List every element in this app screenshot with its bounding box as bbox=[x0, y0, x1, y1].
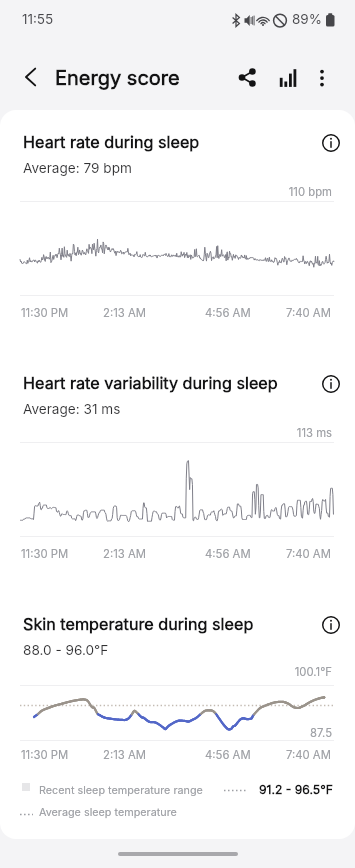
staticText: 7:40 AM bbox=[286, 547, 331, 561]
staticText: Energy score bbox=[55, 66, 180, 90]
staticText: Heart rate variability during sleep bbox=[23, 373, 278, 393]
staticText: Average: 79 bpm bbox=[23, 160, 132, 176]
staticText: 91.2 - 96.5°F bbox=[0, 782, 333, 797]
button[interactable]: About Heart rate during sleep bbox=[316, 128, 346, 158]
staticText: 7:40 AM bbox=[286, 748, 331, 762]
button[interactable]: About skin temperature bbox=[316, 610, 346, 640]
staticText: 2:13 AM bbox=[103, 547, 146, 561]
staticText: 89% bbox=[292, 11, 322, 27]
staticText: 4:56 AM bbox=[205, 306, 251, 320]
staticText: 4:56 AM bbox=[205, 748, 251, 762]
button[interactable]: Share bbox=[232, 62, 264, 94]
staticText: 4:56 AM bbox=[205, 547, 251, 561]
staticText: 11:30 PM bbox=[21, 547, 69, 561]
staticText: 88.0 - 96.0°F bbox=[23, 642, 109, 658]
staticText: 11:30 PM bbox=[21, 748, 69, 762]
button[interactable]: More options bbox=[306, 62, 338, 94]
staticText: 100.1°F bbox=[0, 665, 332, 679]
staticText: Average: 31 ms bbox=[23, 401, 121, 417]
staticText: 110 bpm bbox=[0, 185, 332, 199]
staticText: 113 ms bbox=[0, 426, 332, 440]
staticText: 87.5 bbox=[0, 726, 332, 740]
staticText: 2:13 AM bbox=[103, 748, 146, 762]
staticText: 7:40 AM bbox=[286, 306, 331, 320]
staticText: 2:13 AM bbox=[103, 306, 146, 320]
staticText: Average sleep temperature bbox=[39, 806, 177, 819]
button[interactable]: Statistics bbox=[272, 62, 304, 94]
button[interactable]: Navigate up bbox=[15, 61, 47, 93]
staticText: Skin temperature during sleep bbox=[23, 614, 254, 634]
staticText: 11:55 bbox=[22, 11, 54, 27]
staticText: 11:30 PM bbox=[21, 306, 69, 320]
staticText: Recent sleep temperature range bbox=[39, 784, 203, 797]
staticText: Heart rate during sleep bbox=[23, 132, 200, 152]
button[interactable]: About Heart rate variability during slee… bbox=[316, 369, 346, 399]
